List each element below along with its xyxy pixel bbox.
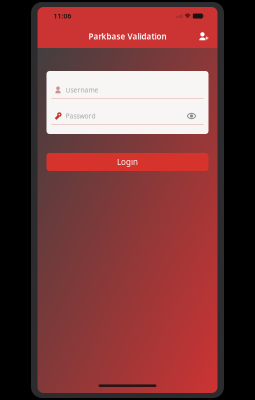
staticText: Password xyxy=(65,112,95,120)
button[interactable]: Show password xyxy=(184,109,198,122)
staticText: 11:06 xyxy=(53,12,71,20)
button[interactable]: Add user xyxy=(193,26,213,46)
staticText: Login xyxy=(117,157,138,167)
button[interactable]: Login xyxy=(46,153,208,171)
staticText: Username xyxy=(65,86,98,94)
staticText: Parkbase Validation xyxy=(88,31,166,42)
